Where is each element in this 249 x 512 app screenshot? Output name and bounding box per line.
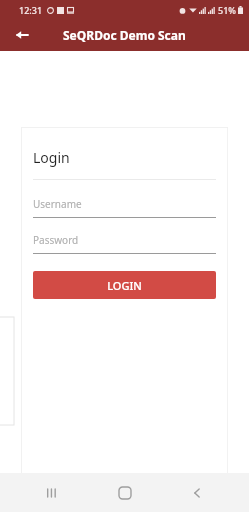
staticText: Username bbox=[33, 197, 82, 211]
staticText: Login bbox=[33, 148, 70, 167]
staticText: 51% bbox=[218, 4, 236, 16]
button[interactable]: Back bbox=[177, 473, 217, 512]
staticText: 12:31 bbox=[19, 4, 43, 16]
button[interactable]: Username bbox=[33, 197, 216, 218]
staticText: SeQRDoc Demo Scan bbox=[63, 27, 186, 43]
staticText: LOGIN bbox=[107, 278, 142, 293]
staticText: Password bbox=[33, 233, 79, 247]
button[interactable]: Password bbox=[33, 233, 216, 254]
button[interactable]: Recent apps bbox=[32, 473, 72, 512]
button[interactable]: LOGIN bbox=[33, 271, 216, 299]
button[interactable]: Back bbox=[8, 21, 36, 49]
button[interactable]: Home bbox=[105, 473, 145, 512]
